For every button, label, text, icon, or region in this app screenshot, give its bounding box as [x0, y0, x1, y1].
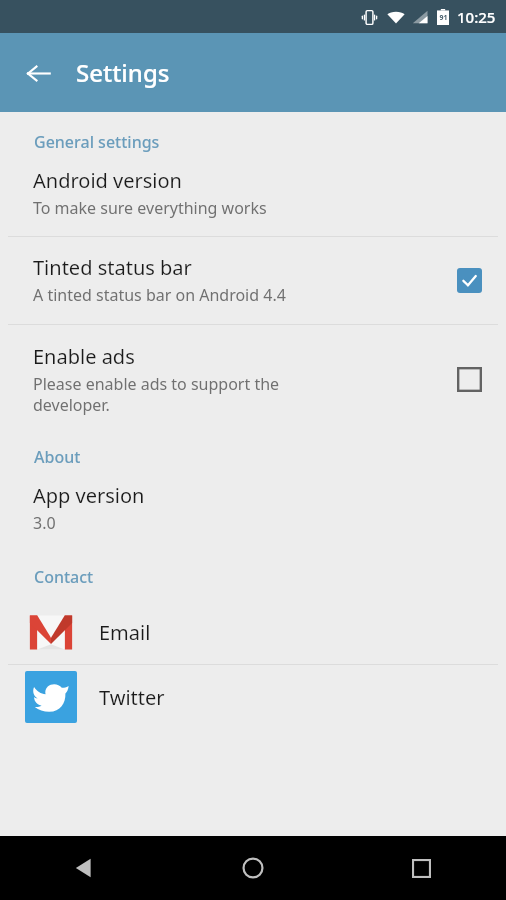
staticText: 91: [439, 13, 448, 23]
staticText: Android version: [33, 167, 182, 194]
other: Checked: [457, 268, 482, 293]
button[interactable]: Enable ads: [0, 325, 506, 430]
button[interactable]: Email: [0, 600, 506, 664]
staticText: 3.0: [33, 512, 56, 534]
staticText: To make sure everything works: [33, 197, 267, 219]
staticText: A tinted status bar on Android 4.4: [33, 284, 286, 306]
button[interactable]: Back: [0, 836, 168, 900]
staticText: Twitter: [99, 684, 165, 711]
staticText: Enable ads: [33, 343, 135, 370]
staticText: Please enable ads to support the develop…: [33, 373, 280, 416]
staticText: Tinted status bar: [33, 254, 192, 281]
staticText: Email: [99, 619, 151, 646]
button[interactable]: Back: [14, 49, 62, 97]
button[interactable]: Android version: [0, 167, 506, 219]
staticText: 10:25: [457, 7, 496, 27]
button[interactable]: Recent apps: [337, 836, 506, 900]
staticText: App version: [33, 482, 145, 509]
button[interactable]: Tinted status bar: [0, 237, 506, 324]
staticText: Settings: [76, 56, 170, 89]
other: Unchecked: [457, 367, 482, 392]
staticText: About: [34, 446, 81, 468]
button[interactable]: Twitter: [0, 665, 506, 729]
staticText: General settings: [34, 131, 160, 153]
button[interactable]: Home: [168, 836, 337, 900]
button[interactable]: App version: [0, 482, 506, 534]
staticText: Contact: [34, 566, 94, 588]
